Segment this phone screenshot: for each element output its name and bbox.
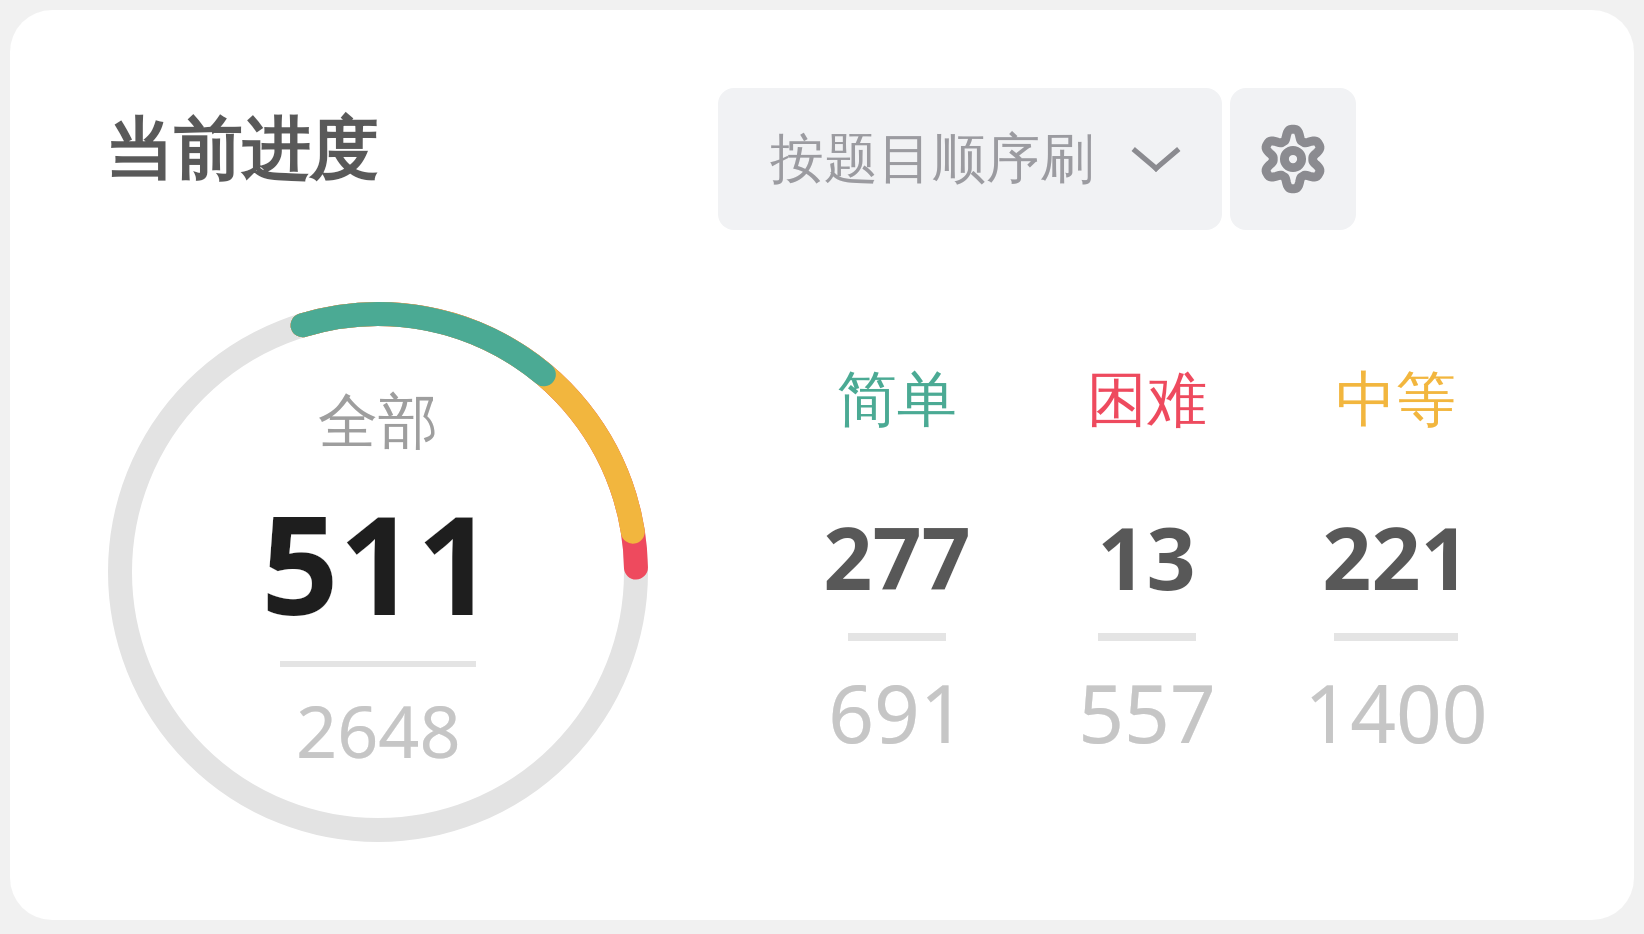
button[interactable]: 中等 [1271, 362, 1520, 766]
staticText: 2648 [296, 681, 461, 779]
staticText: 1400 [1304, 657, 1488, 766]
staticText: 困难 [1087, 362, 1207, 438]
staticText: 13 [1097, 498, 1196, 615]
button[interactable]: 简单 [772, 362, 1022, 766]
button[interactable]: 按题目顺序刷 [718, 88, 1222, 230]
staticText: 557 [1078, 657, 1216, 766]
staticText: 按题目顺序刷 [770, 125, 1094, 193]
button[interactable]: Settings [1230, 88, 1356, 230]
staticText: 221 [1322, 498, 1470, 615]
staticText: 简单 [837, 362, 957, 438]
staticText: 当前进度 [105, 108, 377, 194]
staticText: 全部 [318, 384, 438, 460]
staticText: 511 [261, 470, 495, 655]
staticText: 691 [828, 657, 966, 766]
button[interactable]: 困难 [1022, 362, 1271, 766]
staticText: 277 [823, 498, 971, 615]
staticText: 中等 [1336, 362, 1456, 438]
